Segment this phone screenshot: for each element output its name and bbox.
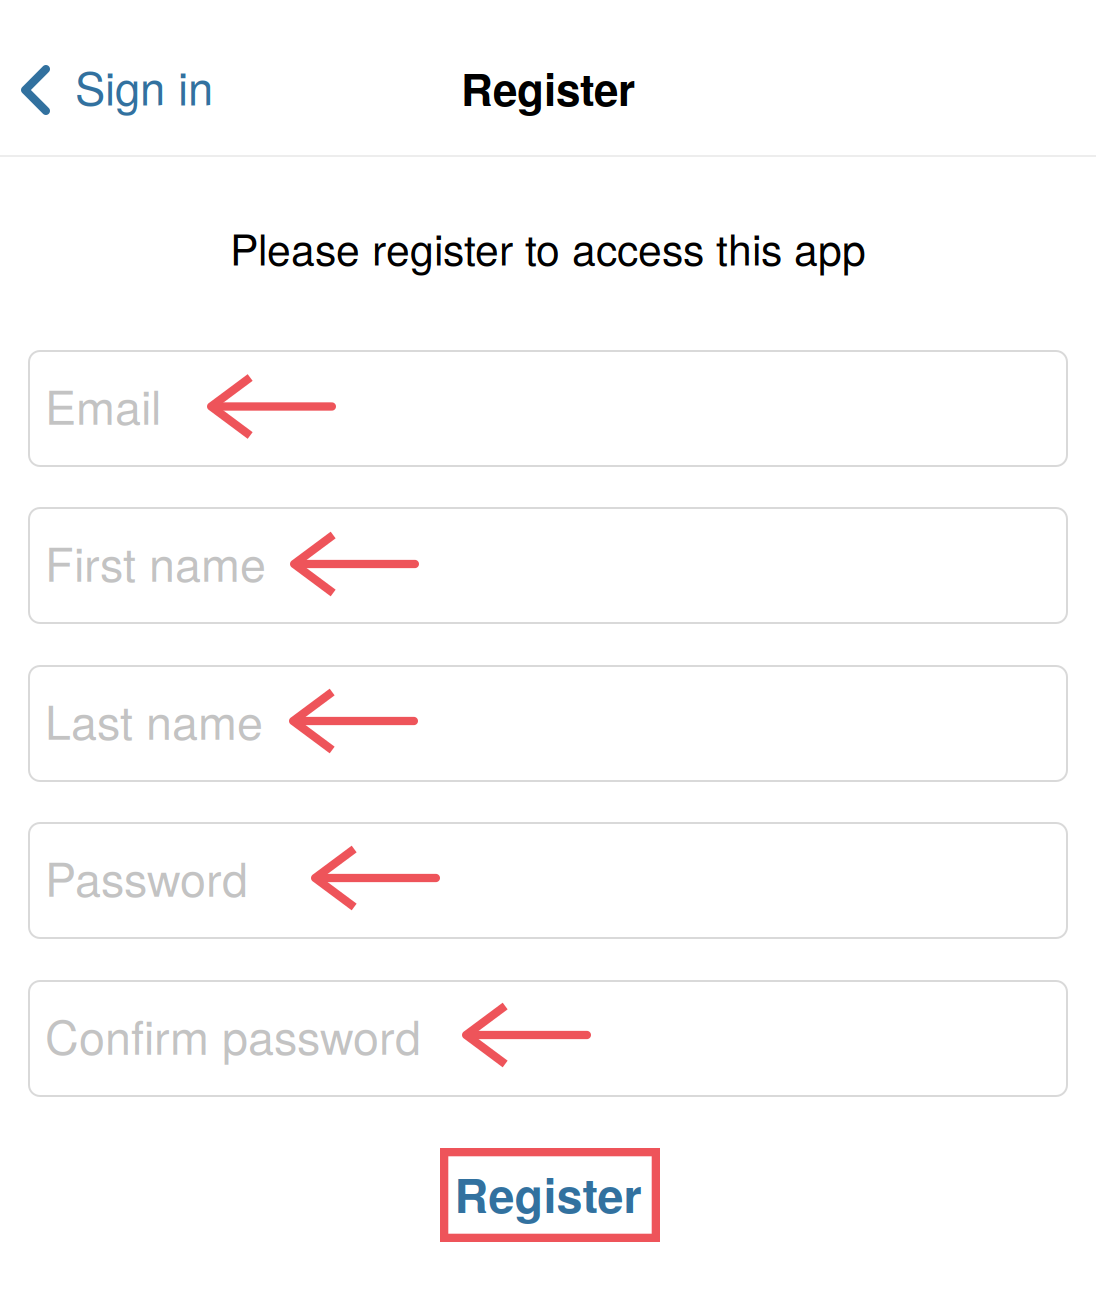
staticText: Register bbox=[454, 1161, 641, 1227]
button[interactable]: First name bbox=[29, 508, 1067, 623]
button[interactable]: Last name bbox=[29, 666, 1067, 781]
staticText: Confirm password bbox=[45, 1001, 421, 1068]
staticText: Password bbox=[45, 843, 248, 910]
staticText: First name bbox=[45, 528, 266, 595]
button[interactable]: Register bbox=[440, 1148, 660, 1242]
staticText: Sign in bbox=[75, 53, 213, 118]
staticText: Register bbox=[461, 56, 635, 119]
staticText: Email bbox=[45, 371, 161, 438]
button[interactable]: Back to Sign in bbox=[21, 33, 257, 139]
staticText: Last name bbox=[45, 686, 263, 753]
button[interactable]: Password bbox=[29, 823, 1067, 938]
button[interactable]: Confirm password bbox=[29, 981, 1067, 1096]
button[interactable]: Email bbox=[29, 351, 1067, 466]
staticText: Please register to access this app bbox=[230, 216, 866, 278]
